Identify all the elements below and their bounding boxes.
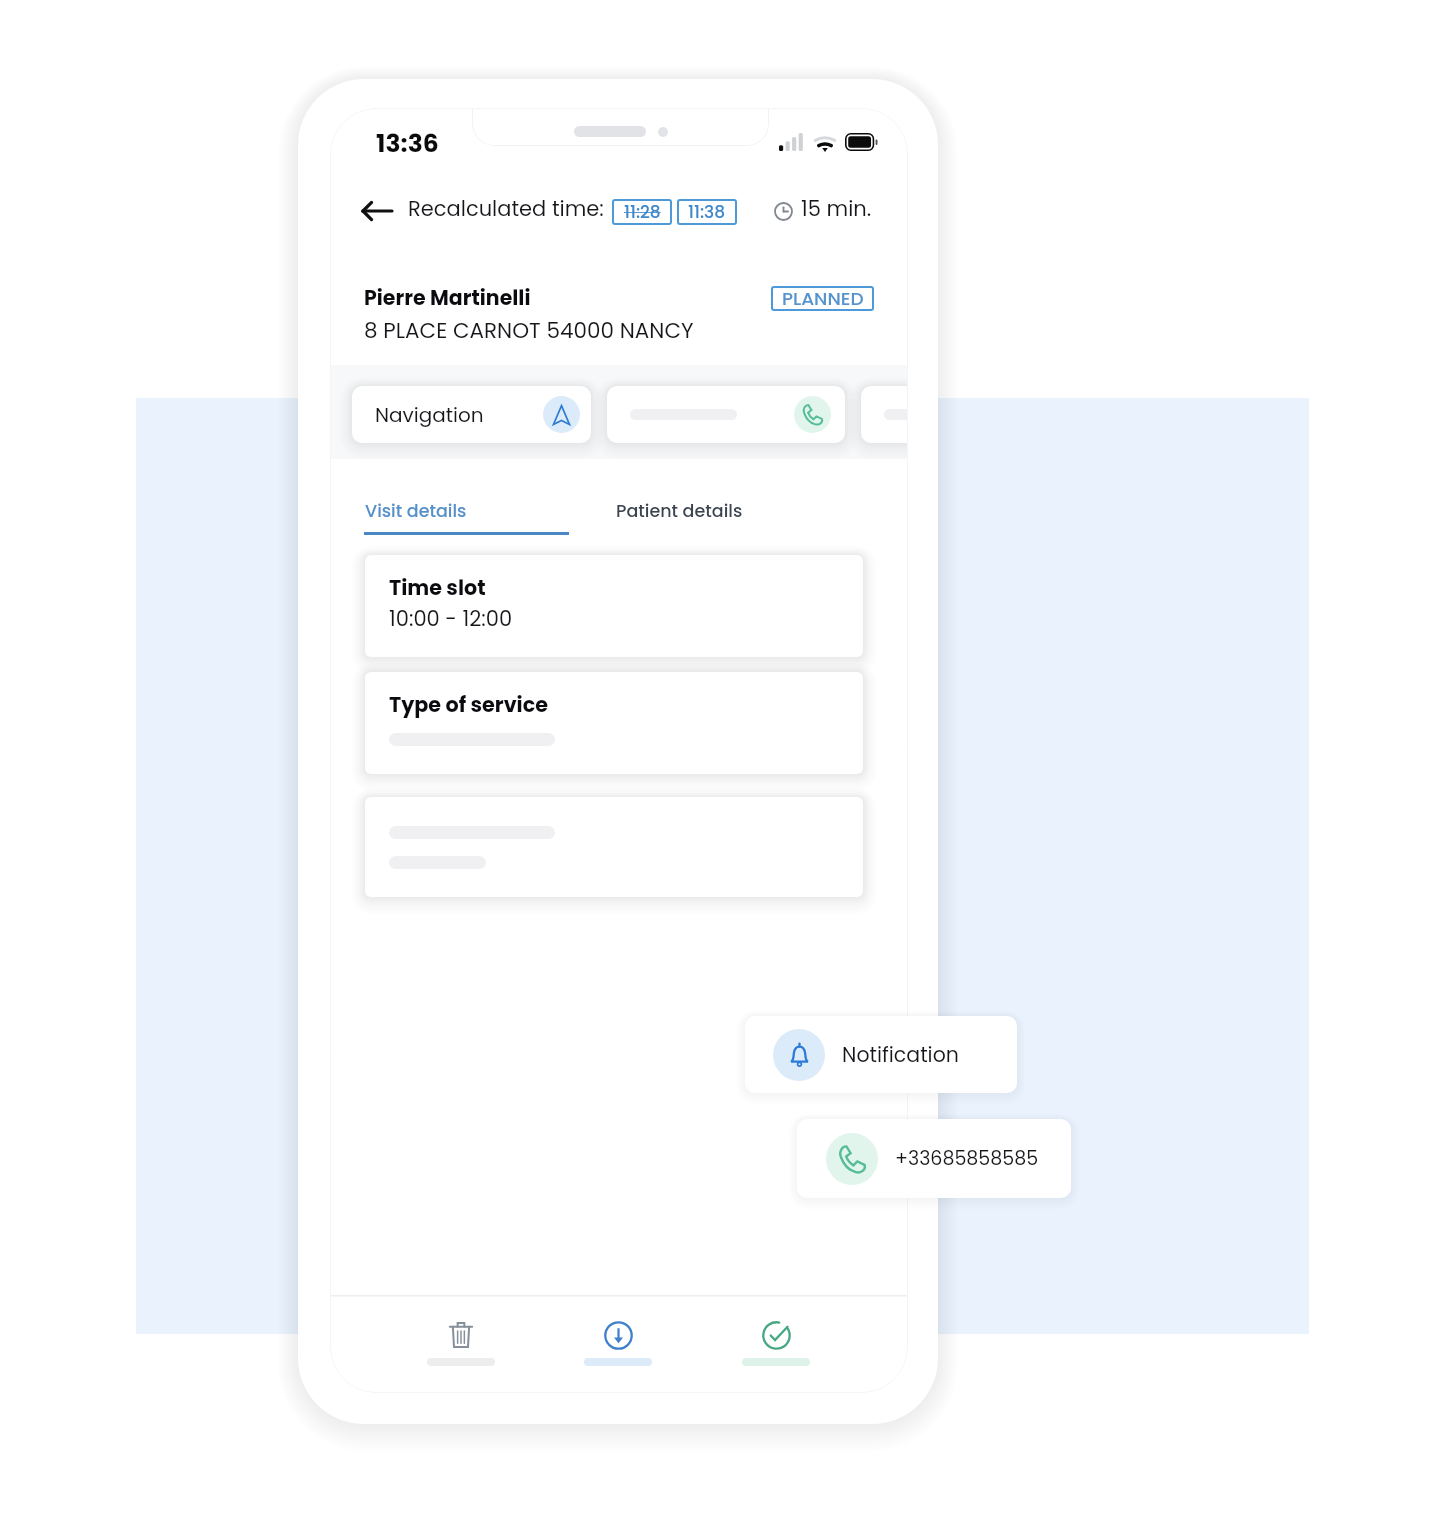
staticText: Pierre Martinelli xyxy=(364,283,531,312)
staticText: +33685858585 xyxy=(895,1145,1039,1172)
staticText: Notification xyxy=(842,1040,959,1069)
button[interactable]: Visit details xyxy=(364,499,468,524)
staticText: Time slot xyxy=(389,573,486,602)
staticText: Navigation xyxy=(375,401,484,429)
button[interactable]: Notification xyxy=(745,1016,1017,1093)
button[interactable]: PLANNED xyxy=(771,286,874,311)
button[interactable]: Call patient xyxy=(607,386,845,443)
staticText: Type of service xyxy=(389,690,548,719)
button[interactable]: Patient details xyxy=(615,499,744,524)
button[interactable] xyxy=(365,797,863,897)
staticText: Recalculated time: xyxy=(408,194,604,223)
button[interactable]: Navigation xyxy=(352,386,591,443)
staticText: 15 min. xyxy=(801,194,872,223)
staticText: 10:00 - 12:00 xyxy=(389,604,513,633)
button[interactable]: +33685858585 xyxy=(797,1119,1071,1198)
staticText: 11:28 xyxy=(624,200,661,224)
button[interactable]: More actions xyxy=(861,386,908,443)
staticText: 11:38 xyxy=(688,200,726,224)
button[interactable]: Delete xyxy=(417,1313,505,1385)
button[interactable]: Back xyxy=(355,189,399,233)
button[interactable]: Time slot xyxy=(365,555,863,657)
staticText: PLANNED xyxy=(782,286,864,311)
button[interactable]: Complete xyxy=(732,1313,820,1385)
button[interactable]: Download xyxy=(574,1313,662,1385)
button[interactable]: Type of service xyxy=(365,672,863,774)
staticText: 13:36 xyxy=(376,126,439,161)
staticText: 8 PLACE CARNOT 54000 NANCY xyxy=(364,315,694,345)
